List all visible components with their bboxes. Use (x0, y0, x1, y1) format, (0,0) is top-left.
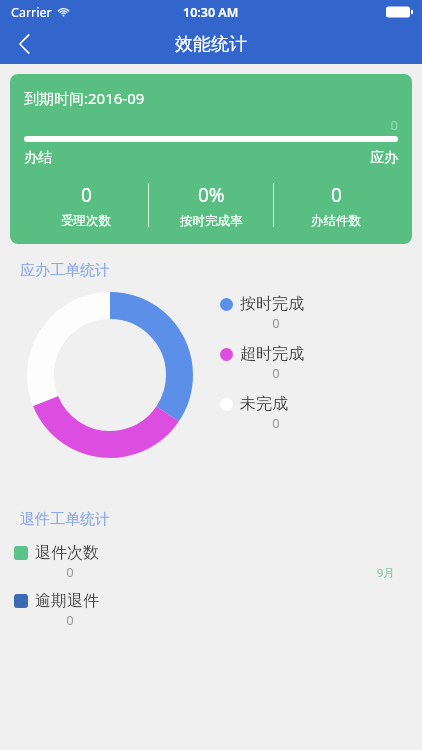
staticText: 按时完成 (240, 294, 304, 314)
staticText: 9月 (377, 565, 395, 580)
staticText: 0 (240, 364, 312, 382)
button[interactable]: 0 (274, 182, 398, 229)
staticText: 办结 (24, 149, 52, 167)
staticText: 0 (81, 182, 92, 208)
staticText: 办结件数 (311, 213, 361, 229)
button[interactable]: 到期时间:2016-09 (10, 74, 412, 244)
staticText: 受理次数 (61, 213, 111, 229)
staticText: 0% (198, 182, 225, 208)
staticText: 0 (35, 563, 105, 581)
staticText: 应办工单统计 (20, 261, 110, 280)
staticText: 未完成 (240, 394, 288, 414)
button[interactable]: 逾期退件 (14, 591, 105, 629)
button[interactable]: Back (0, 24, 48, 64)
staticText: 0 (240, 414, 312, 432)
staticText: 逾期退件 (35, 591, 99, 611)
staticText: 退件工单统计 (20, 510, 110, 529)
button[interactable]: 未完成 (220, 394, 312, 432)
button[interactable]: 退件次数 (14, 543, 105, 581)
staticText: 10:30 AM (183, 4, 239, 21)
staticText: 0 (35, 611, 105, 629)
staticText: 应办 (370, 149, 398, 167)
staticText: 按时完成率 (180, 213, 243, 229)
staticText: 0 (24, 116, 398, 134)
staticText: Carrier (11, 4, 52, 21)
button[interactable]: 0 (24, 182, 148, 229)
button[interactable]: 超时完成 (220, 344, 312, 382)
staticText: 超时完成 (240, 344, 304, 364)
button[interactable]: 0% (149, 182, 273, 229)
staticText: 0 (331, 182, 342, 208)
staticText: 到期时间:2016-09 (24, 88, 145, 108)
staticText: 退件次数 (35, 543, 99, 563)
button[interactable]: 按时完成 (220, 294, 312, 332)
staticText: 效能统计 (175, 33, 247, 56)
staticText: 0 (240, 314, 312, 332)
